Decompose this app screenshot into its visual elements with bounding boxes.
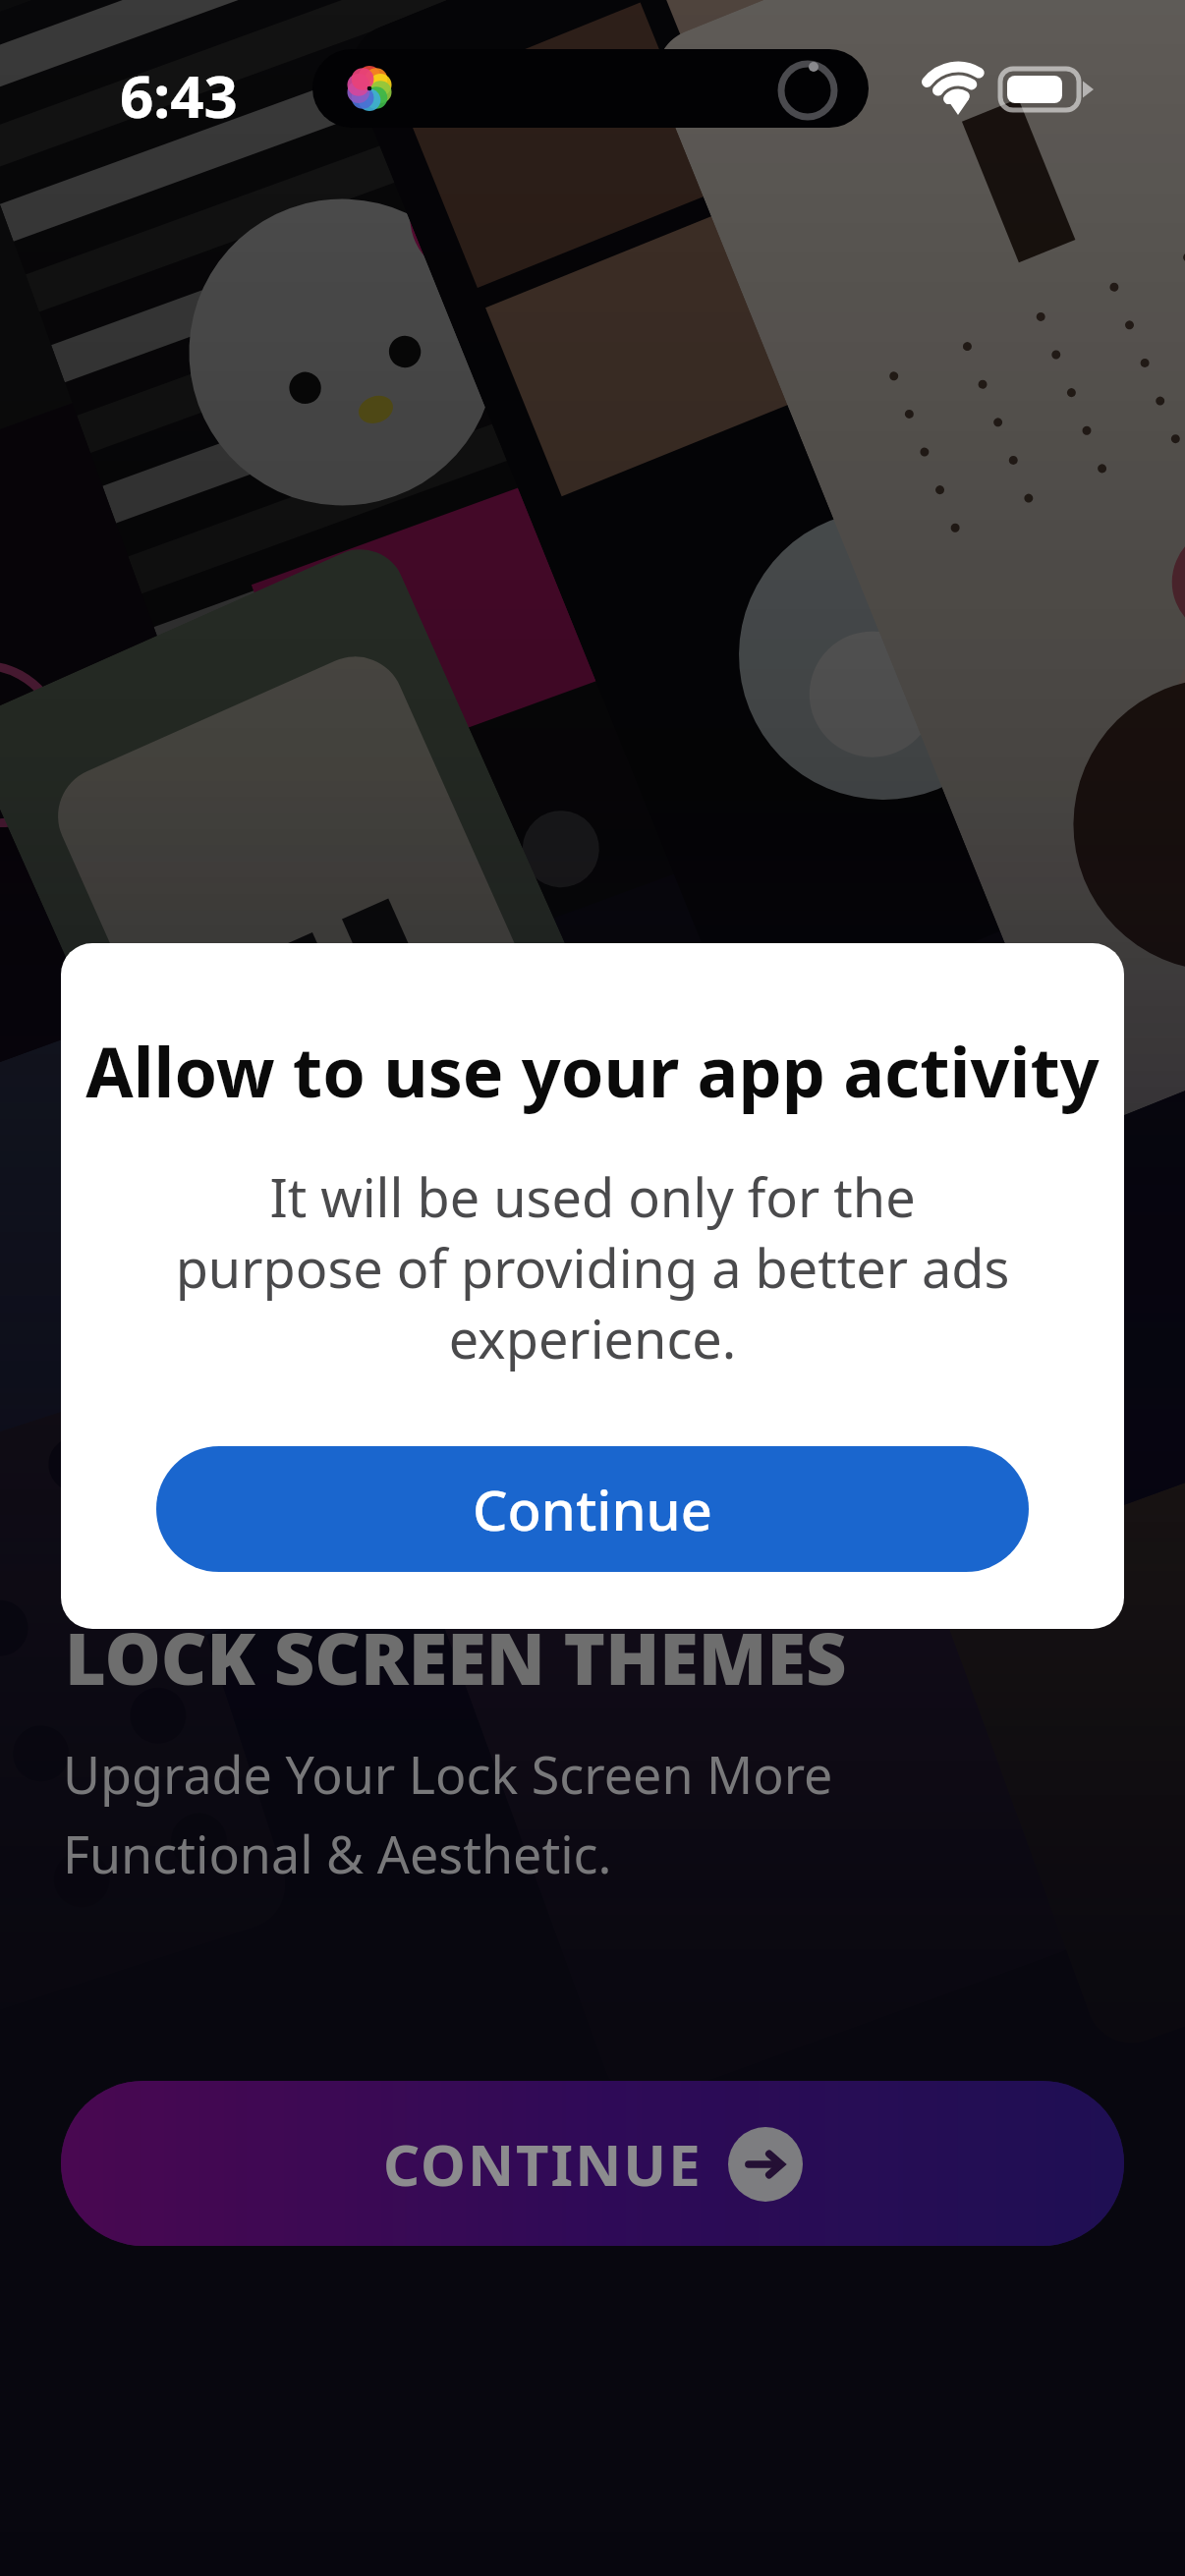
other: Continue <box>728 2127 803 2202</box>
button[interactable]: Continue <box>156 1446 1029 1572</box>
staticText: It will be used only for the purpose of … <box>170 1160 1015 1373</box>
staticText: CONTINUE <box>383 2125 703 2203</box>
staticText: Allow to use your app activity <box>85 1024 1100 1117</box>
staticText: 6:43 <box>120 55 238 136</box>
staticText: LOCK SCREEN THEMES <box>65 1609 847 1706</box>
button[interactable]: CONTINUE <box>61 2081 1124 2246</box>
staticText: Continue <box>473 1472 712 1546</box>
staticText: Upgrade Your Lock Screen More Functional… <box>63 1739 833 1889</box>
